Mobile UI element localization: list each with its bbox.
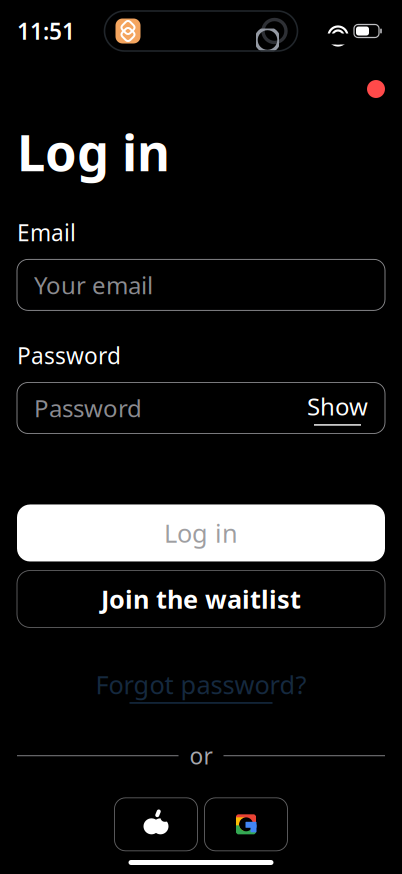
button[interactable]: Join the waitlist [17,570,385,627]
staticText: Join the waitlist [101,582,301,616]
button[interactable]: Your email [17,259,385,310]
button[interactable]: Continue with Apple [114,798,197,851]
staticText: Forgot password? [95,667,306,701]
staticText: or [189,741,212,771]
staticText: Password [34,392,142,424]
staticText: Password [17,340,121,370]
staticText: Email [17,217,76,247]
button[interactable]: Log in [17,504,385,561]
staticText: 11:51 [17,16,75,46]
staticText: Log in [17,118,170,185]
button[interactable]: Password [17,382,385,433]
button[interactable]: Continue with Google [204,798,287,851]
button[interactable]: Forgot password? [89,663,312,708]
staticText: Log in [164,516,238,550]
staticText: Your email [34,269,153,301]
staticText: Show [307,390,368,422]
